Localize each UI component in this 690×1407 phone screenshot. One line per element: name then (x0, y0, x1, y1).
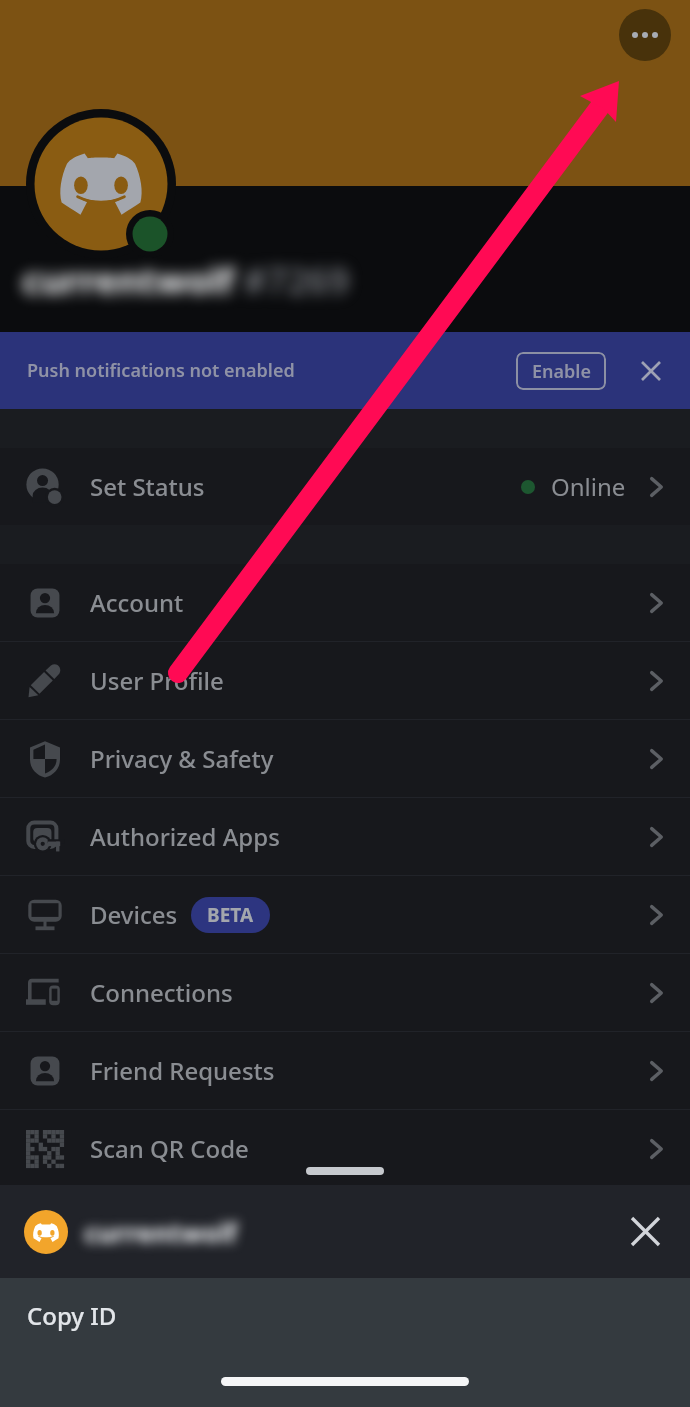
button[interactable]: Friend Requests (0, 1032, 690, 1109)
button[interactable]: Close (623, 1209, 667, 1253)
staticText: User Profile (90, 664, 224, 697)
staticText: currentwolf (22, 256, 234, 305)
staticText: Devices (90, 898, 178, 931)
staticText: BETA (207, 902, 254, 928)
staticText: Enable (532, 359, 591, 384)
button[interactable]: Devices (0, 876, 690, 953)
button[interactable]: Enable (516, 352, 606, 390)
staticText: Set Status (90, 470, 205, 503)
button[interactable]: More options (619, 9, 671, 61)
staticText: Online (551, 470, 626, 503)
button[interactable]: Scan QR Code (0, 1110, 690, 1187)
staticText: Friend Requests (90, 1054, 275, 1087)
staticText: Privacy & Safety (90, 742, 274, 775)
button[interactable]: Authorized Apps (0, 798, 690, 875)
staticText: Account (90, 586, 184, 619)
staticText: Scan QR Code (90, 1132, 249, 1165)
button[interactable]: Connections (0, 954, 690, 1031)
staticText: currentwolf (84, 1215, 238, 1250)
button[interactable]: User Profile (0, 642, 690, 719)
button[interactable]: Dismiss notification banner (633, 353, 669, 389)
staticText: Connections (90, 976, 233, 1009)
button[interactable]: Set Status (0, 448, 690, 525)
staticText: #7269 (234, 256, 349, 305)
button[interactable]: Account (0, 564, 690, 641)
staticText: Authorized Apps (90, 820, 280, 853)
staticText: Copy ID (27, 1299, 117, 1332)
button[interactable]: Privacy & Safety (0, 720, 690, 797)
button[interactable]: Copy ID (0, 1278, 690, 1353)
staticText: Push notifications not enabled (27, 358, 295, 383)
